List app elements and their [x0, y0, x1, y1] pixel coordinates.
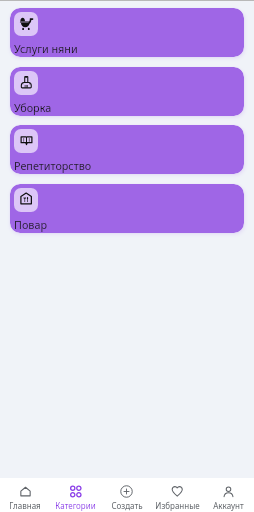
button[interactable]: Создать: [101, 478, 152, 512]
staticText: Аккаунт: [213, 500, 244, 511]
staticText: Избранные: [155, 500, 200, 511]
staticText: Создать: [111, 500, 143, 511]
staticText: Главная: [9, 500, 41, 511]
button[interactable]: Повар: [10, 184, 244, 233]
button[interactable]: Категории: [50, 478, 101, 512]
staticText: Повар: [14, 217, 47, 232]
button[interactable]: Главная: [0, 478, 50, 512]
button[interactable]: Избранные: [152, 478, 203, 512]
button[interactable]: Услуги няни: [10, 8, 244, 57]
staticText: Уборка: [14, 100, 52, 115]
button[interactable]: Уборка: [10, 67, 244, 116]
button[interactable]: Репетиторство: [10, 125, 244, 174]
staticText: Репетиторство: [14, 158, 92, 173]
staticText: Услуги няни: [14, 41, 78, 56]
staticText: Категории: [55, 500, 96, 511]
button[interactable]: Аккаунт: [203, 478, 254, 512]
